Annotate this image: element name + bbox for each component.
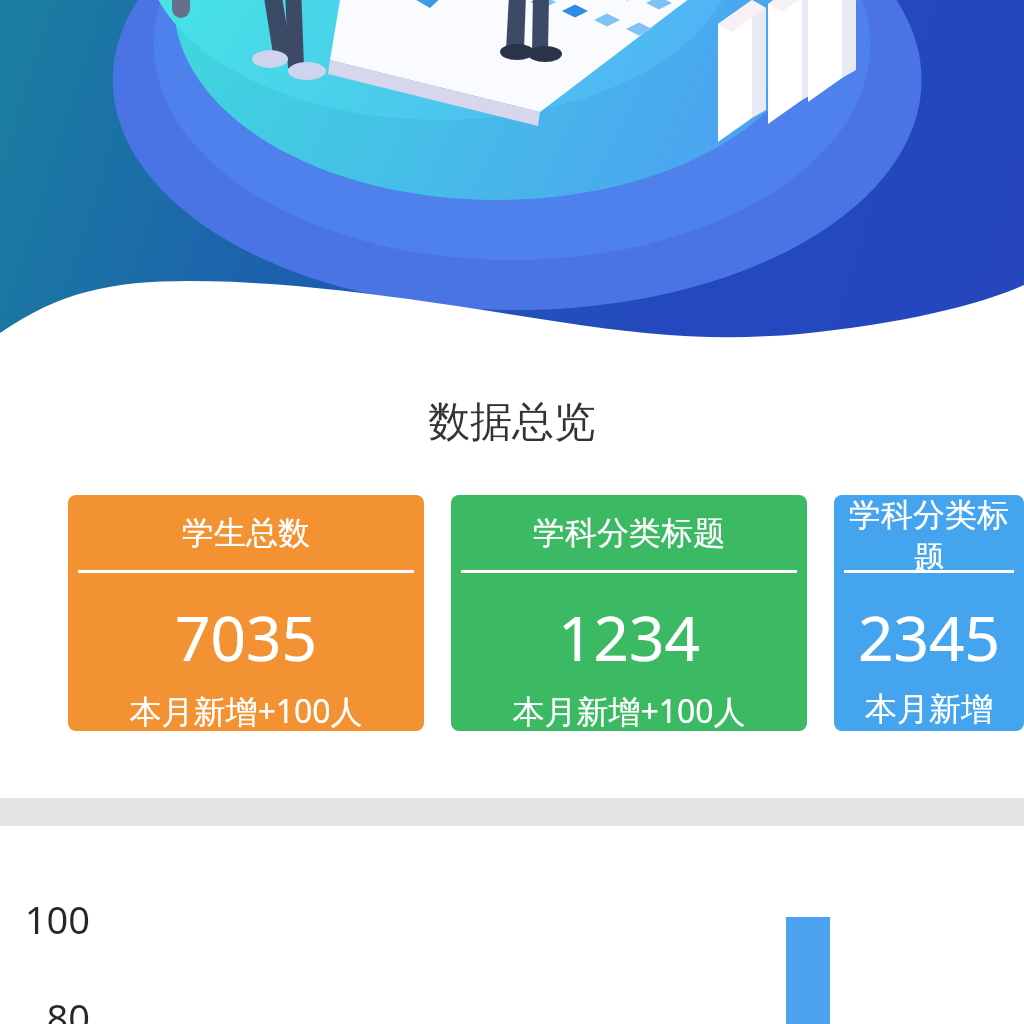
staticText: 学生总数 [182,513,310,553]
staticText: 本月新增+100人 [834,689,1024,731]
button[interactable]: 学生总数 [68,495,424,731]
button[interactable]: 学科分类标题 [451,495,807,731]
staticText: 学科分类标题 [533,513,725,553]
staticText: 80 [0,991,90,1024]
button[interactable]: 学科分类标题 [834,495,1024,731]
staticText: 1234 [558,595,700,679]
staticText: 2345 [858,595,1000,679]
staticText: 7035 [175,595,317,679]
staticText: 数据总览 [0,396,1024,449]
staticText: 100 [0,893,90,945]
staticText: 本月新增+100人 [512,689,746,731]
staticText: 本月新增+100人 [129,689,363,731]
staticText: 学科分类标题 [834,495,1024,570]
